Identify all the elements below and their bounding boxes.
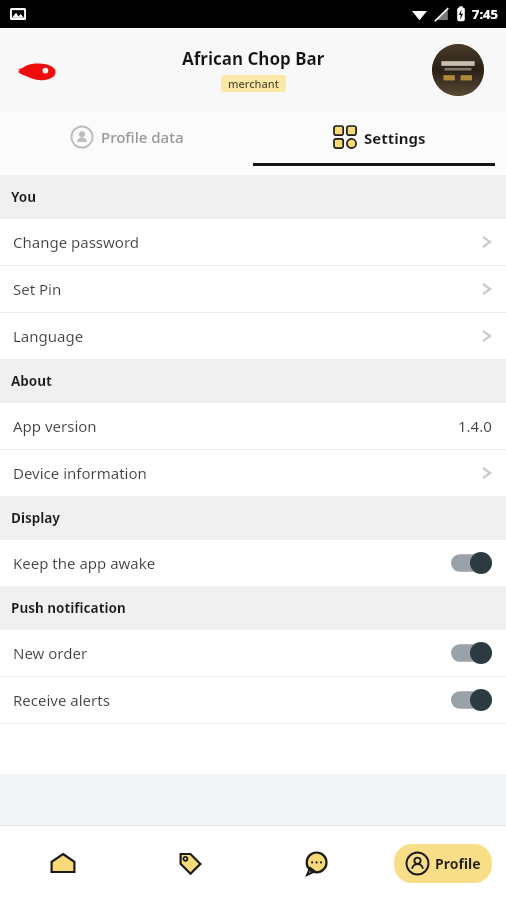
staticText: African Chop Bar [182,47,325,70]
button[interactable]: Change password [0,219,506,265]
staticText: New order [13,643,451,663]
button[interactable]: Device information [0,450,506,496]
button[interactable]: Keep the app awake [0,540,506,586]
staticText: Display [11,509,61,527]
staticText: Profile data [101,127,184,147]
button[interactable]: Receive alerts [0,677,506,723]
staticText: Set Pin [13,279,481,299]
staticText: 1.4.0 [458,416,492,436]
button[interactable]: Language [0,313,506,359]
staticText: Keep the app awake [13,553,451,573]
staticText: Language [13,326,481,346]
staticText: Profile [435,854,481,873]
staticText: 7:45 [472,5,498,23]
staticText: Push notification [11,599,126,617]
button[interactable]: Home [0,826,126,900]
button[interactable]: Profile data [0,111,253,163]
button[interactable]: New order [0,630,506,676]
staticText: merchant [228,76,279,91]
button[interactable]: Settings [253,111,506,163]
staticText: About [11,372,52,390]
staticText: Settings [364,128,426,148]
staticText: Device information [13,463,481,483]
button[interactable]: Profile [394,844,492,883]
button[interactable]: Set Pin [0,266,506,312]
button[interactable]: Offers [126,826,252,900]
button[interactable]: Merchant avatar [432,44,484,96]
staticText: Change password [13,232,481,252]
staticText: App version [13,416,458,436]
other: Logo [16,57,58,83]
staticText: You [11,188,36,206]
button[interactable]: App version [0,403,506,449]
staticText: Receive alerts [13,690,451,710]
button[interactable]: Messages [252,826,379,900]
